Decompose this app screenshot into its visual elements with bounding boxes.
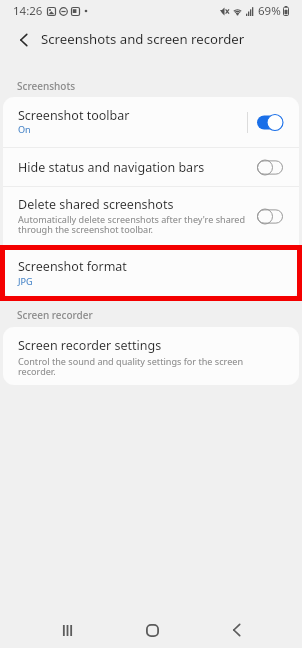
staticText: Screenshot toolbar bbox=[18, 107, 130, 124]
staticText: Screenshot format bbox=[18, 258, 127, 275]
staticText: Screen recorder settings bbox=[18, 337, 162, 354]
button[interactable]: Home bbox=[130, 608, 174, 648]
staticText: Screen recorder bbox=[17, 308, 93, 319]
button[interactable]: Switch off bbox=[257, 159, 283, 176]
staticText: Hide status and navigation bars bbox=[18, 159, 205, 176]
button[interactable]: Back bbox=[214, 608, 258, 648]
button[interactable]: Hide status and navigation bars bbox=[3, 148, 299, 186]
staticText: On bbox=[18, 123, 31, 135]
button[interactable]: Navigate up bbox=[0, 22, 41, 56]
staticText: 69% bbox=[258, 3, 281, 19]
button[interactable]: Delete shared screenshots bbox=[3, 187, 299, 245]
staticText: Screenshots and screen recorder bbox=[41, 30, 245, 48]
staticText: Automatically delete screenshots after t… bbox=[18, 213, 250, 236]
staticText: 14:26 bbox=[13, 3, 43, 19]
button[interactable]: Screen recorder settings bbox=[3, 327, 299, 385]
button[interactable]: Switch off bbox=[257, 208, 283, 225]
button[interactable]: Switch on bbox=[257, 114, 283, 131]
staticText: Screenshots bbox=[17, 79, 76, 90]
staticText: Delete shared screenshots bbox=[18, 196, 174, 213]
button[interactable]: Screenshot toolbar bbox=[3, 97, 299, 147]
staticText: JPG bbox=[18, 275, 33, 287]
staticText: Control the sound and quality settings f… bbox=[18, 355, 250, 378]
button[interactable]: Screenshot format bbox=[3, 246, 299, 298]
button[interactable]: Recent apps bbox=[45, 608, 89, 648]
